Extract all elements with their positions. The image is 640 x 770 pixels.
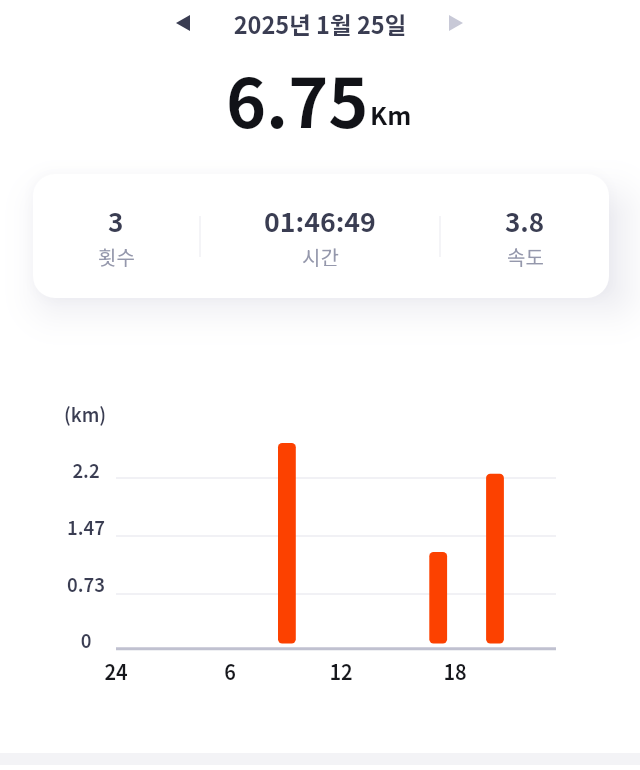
staticText: 1.47 <box>26 514 146 541</box>
staticText: Km <box>370 96 412 132</box>
button[interactable]: 01:46:49 <box>201 174 439 298</box>
staticText: 0 <box>26 627 146 654</box>
button[interactable]: Previous day <box>164 4 202 42</box>
staticText: 6 <box>190 657 270 686</box>
button[interactable]: Next day <box>437 4 475 42</box>
staticText: 속도 <box>507 242 544 271</box>
staticText: 0.73 <box>26 571 146 598</box>
staticText: 3.8 <box>505 202 545 240</box>
staticText: (km) <box>25 401 145 428</box>
staticText: 2025년 1월 25일 <box>0 7 640 41</box>
staticText: 2.2 <box>26 457 146 484</box>
staticText: 횟수 <box>98 242 135 271</box>
staticText: 24 <box>76 657 156 686</box>
staticText: 12 <box>301 657 381 686</box>
staticText: 시간 <box>302 242 339 271</box>
staticText: 18 <box>415 657 495 686</box>
staticText: 01:46:49 <box>264 201 376 240</box>
button[interactable]: 3 <box>33 174 199 298</box>
staticText: 3 <box>108 202 124 240</box>
staticText: 6.75 <box>226 49 369 147</box>
button[interactable]: 3.8 <box>441 174 609 298</box>
